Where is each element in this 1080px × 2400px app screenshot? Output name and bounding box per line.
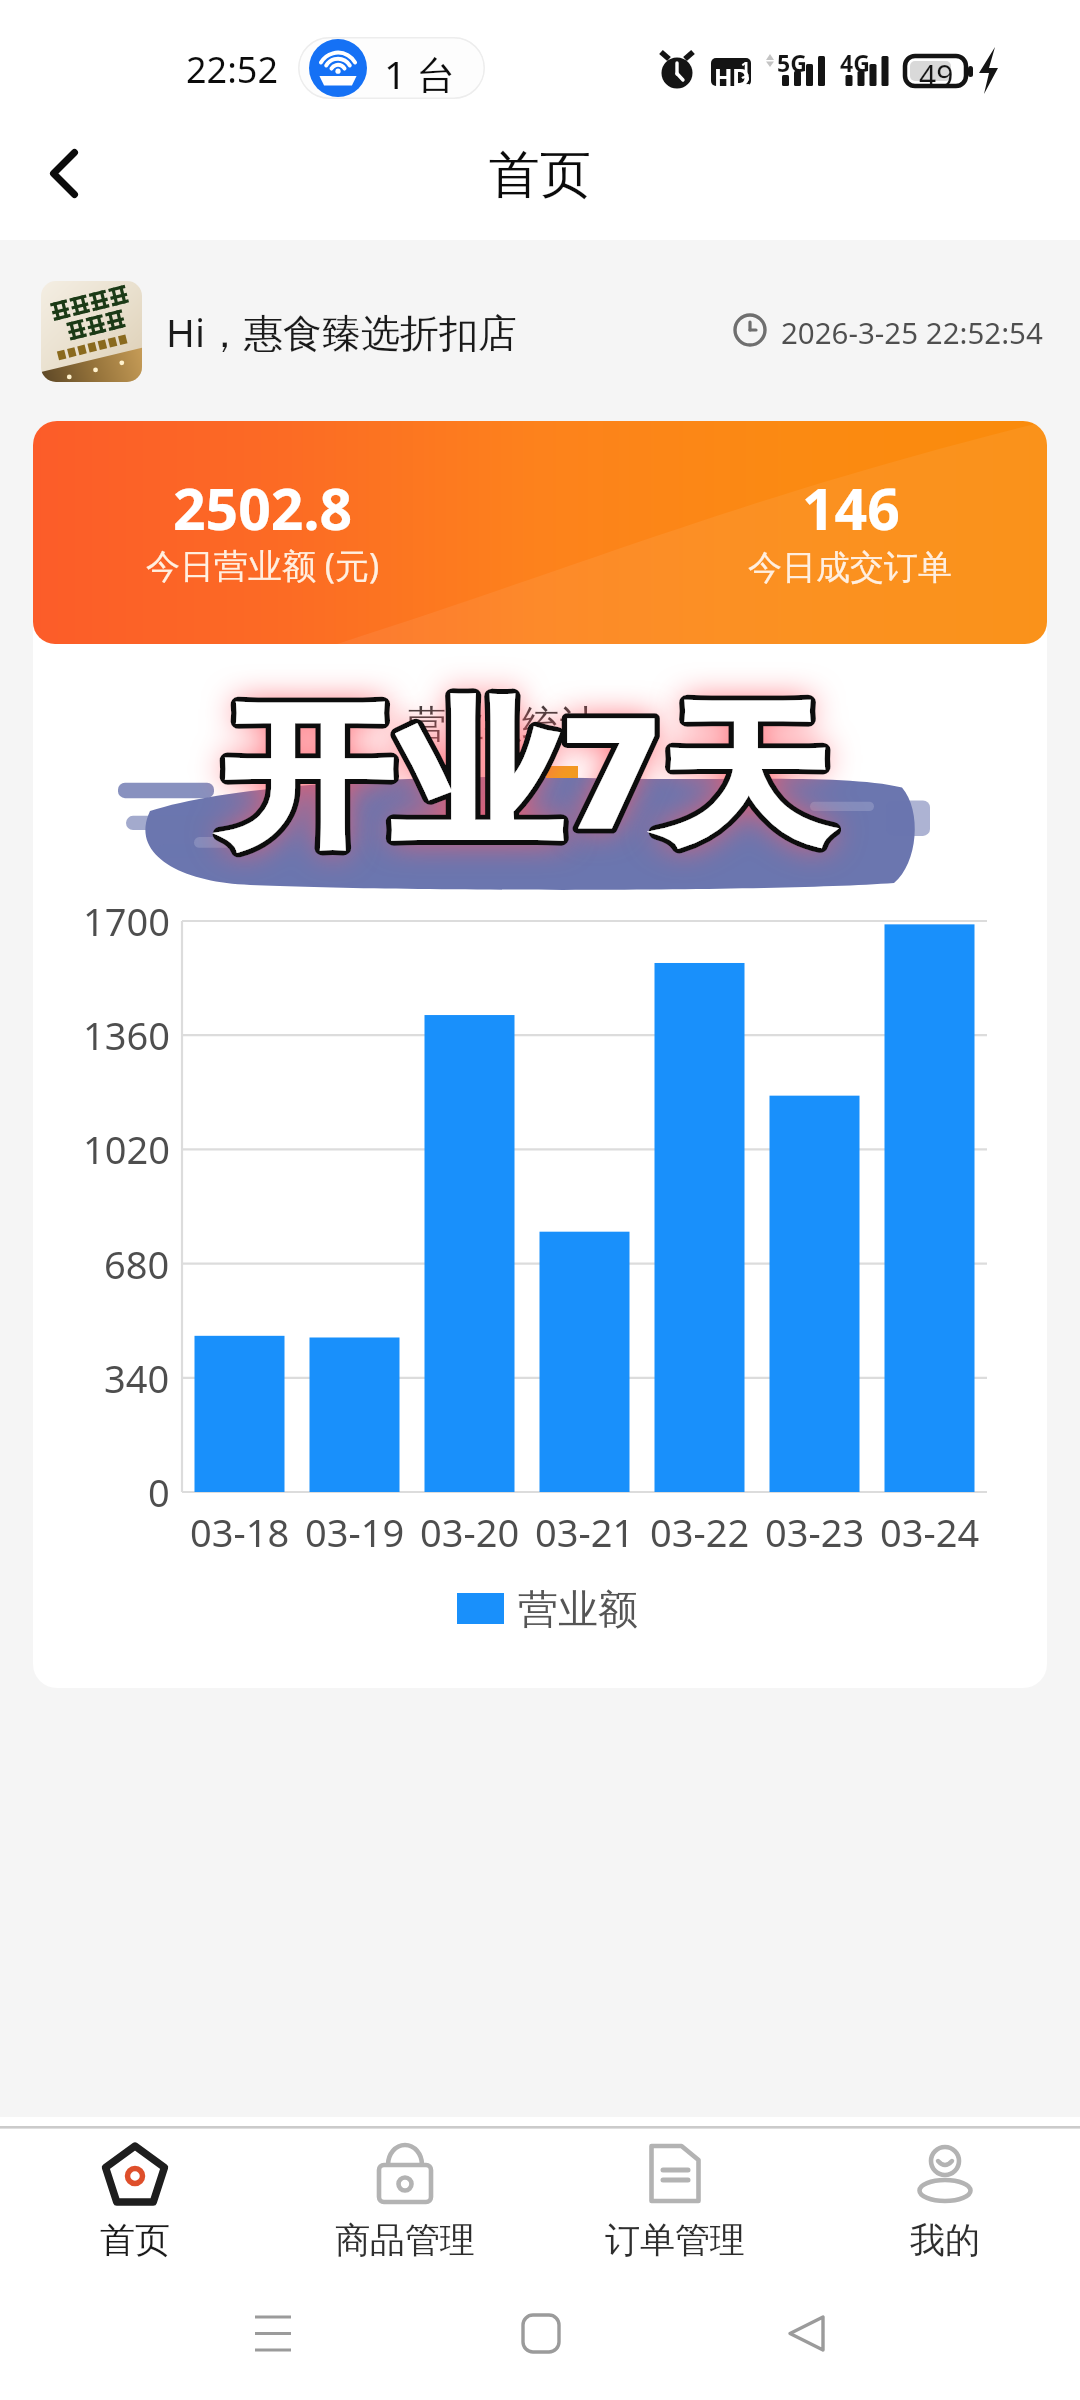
staticText: 开业7天	[222, 664, 830, 874]
staticText: HD	[714, 60, 750, 93]
staticText: 4G	[840, 47, 870, 78]
staticText: 订单管理	[605, 2218, 745, 2262]
staticText: 03-21	[535, 1506, 635, 1558]
staticText: 开业7天	[222, 664, 830, 874]
staticText: 03-23	[765, 1506, 865, 1558]
staticText: 2502.8	[173, 469, 353, 547]
staticText: 0	[148, 1466, 170, 1518]
staticText: 2	[741, 70, 750, 90]
staticText: Hi，惠食臻选折扣店	[166, 305, 517, 358]
staticText: 1	[741, 56, 750, 76]
button[interactable]: 返回	[24, 133, 104, 213]
staticText: 5G	[777, 47, 807, 78]
button[interactable]: 最近任务	[233, 2293, 313, 2373]
staticText: 2026-3-25 22:52:54	[781, 312, 1043, 352]
staticText: 我的	[910, 2218, 980, 2262]
staticText: 03-22	[650, 1506, 750, 1558]
staticText: 1 台	[384, 47, 456, 99]
button[interactable]: 主页	[501, 2293, 581, 2373]
staticText: 今日营业额 (元)	[146, 542, 380, 588]
staticText: 146	[802, 469, 900, 547]
button[interactable]: 商品管理	[270, 2117, 540, 2277]
staticText: 22:52	[186, 45, 279, 94]
staticText: 340	[104, 1352, 170, 1404]
staticText: 1360	[83, 1009, 170, 1061]
staticText: 首页	[100, 2218, 170, 2262]
staticText: 03-20	[420, 1506, 520, 1558]
staticText: 1020	[83, 1123, 170, 1175]
staticText: 今日成交订单	[748, 546, 952, 589]
staticText: 营业额	[518, 1584, 638, 1634]
staticText: 首页	[489, 143, 591, 207]
staticText: 03-18	[190, 1506, 290, 1558]
button[interactable]: 返回	[766, 2293, 846, 2373]
staticText: 商品管理	[335, 2218, 475, 2262]
button[interactable]: 订单管理	[540, 2117, 810, 2277]
staticText: 49	[919, 55, 954, 96]
staticText: 680	[104, 1238, 170, 1290]
staticText: 1700	[83, 895, 170, 947]
button[interactable]: 我的	[810, 2117, 1080, 2277]
staticText: 03-24	[880, 1506, 980, 1558]
staticText: 营业额统计	[408, 700, 598, 748]
staticText: 开业7天	[222, 664, 830, 874]
staticText: 03-19	[305, 1506, 405, 1558]
button[interactable]: 首页	[0, 2117, 270, 2277]
